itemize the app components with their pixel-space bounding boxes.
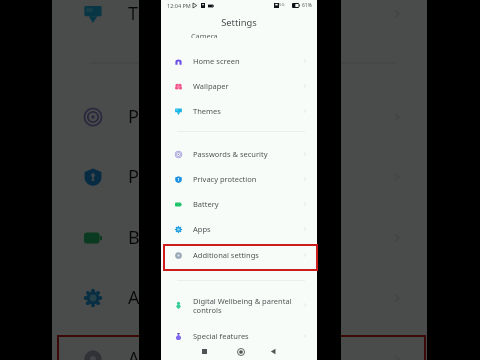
staticText: Settings — [161, 16, 317, 29]
button[interactable]: Special features — [161, 325, 317, 347]
staticText: Battery — [128, 225, 385, 250]
staticText: Apps — [128, 285, 385, 310]
button[interactable]: Passwords & security — [52, 90, 427, 143]
button[interactable]: Additional settings — [52, 332, 427, 360]
staticText: 12:04 PM — [167, 2, 191, 9]
button[interactable]: Apps — [161, 218, 317, 240]
button[interactable]: Passwords & security — [161, 143, 317, 165]
button[interactable]: Home — [235, 346, 246, 357]
staticText: Themes — [128, 1, 385, 26]
staticText: Wallpaper — [193, 81, 300, 91]
button[interactable]: Back — [269, 347, 278, 356]
button[interactable]: Privacy protection — [161, 168, 317, 190]
button[interactable]: Themes — [52, 0, 427, 40]
button[interactable]: Recent apps — [200, 347, 209, 356]
staticText: Home screen — [193, 56, 300, 66]
button[interactable]: Wallpaper — [161, 75, 317, 97]
staticText: Apps — [193, 224, 300, 234]
staticText: Privacy protection — [128, 164, 385, 189]
staticText: Additional settings — [128, 346, 385, 360]
button[interactable]: Apps — [52, 271, 427, 324]
staticText: 61% — [302, 2, 312, 9]
staticText: Additional settings — [193, 250, 300, 260]
button[interactable]: Themes — [161, 100, 317, 122]
staticText: Special features — [193, 331, 300, 341]
staticText: Passwords & security — [128, 104, 385, 129]
staticText: Privacy protection — [193, 174, 300, 184]
staticText: Camera — [191, 32, 218, 38]
button[interactable]: Privacy protection — [52, 150, 427, 203]
button[interactable]: Battery — [161, 193, 317, 215]
staticText: 5G — [279, 2, 285, 8]
staticText: Themes — [193, 106, 300, 116]
staticText: Digital Wellbeing & parental controls — [193, 296, 300, 315]
button[interactable]: Additional settings — [161, 244, 317, 266]
staticText: Passwords & security — [193, 149, 300, 159]
button[interactable]: Battery — [52, 211, 427, 264]
staticText: Battery — [193, 199, 300, 209]
button[interactable]: Digital Wellbeing & parental controls — [161, 294, 317, 316]
button[interactable]: Home screen — [161, 50, 317, 72]
